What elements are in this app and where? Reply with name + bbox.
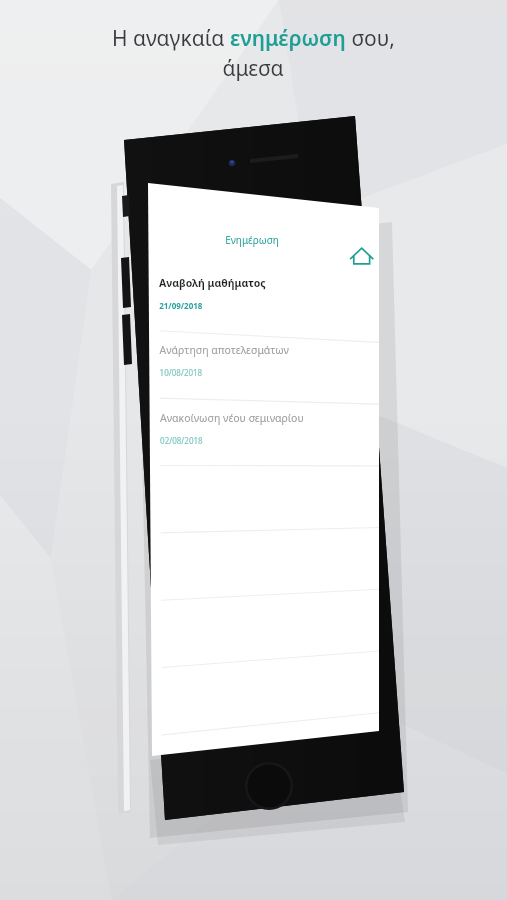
button[interactable]: Ενημέρωση app promo <box>0 0 507 900</box>
